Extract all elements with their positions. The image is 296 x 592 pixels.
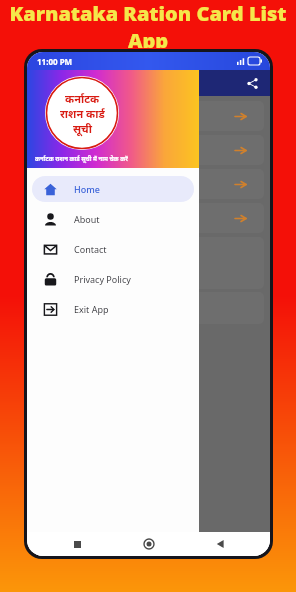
staticText: सूची <box>73 121 92 136</box>
staticText: Contact <box>74 243 107 255</box>
staticText: कर्नाटक <box>65 91 100 106</box>
staticText: बटन दबाकर इस एप को शेयर करें <box>39 296 90 316</box>
button[interactable] <box>33 203 264 233</box>
button[interactable] <box>33 101 264 131</box>
staticText: कर्नाटक राशन कार्ड सूची में नाम चेक करें <box>35 155 128 163</box>
staticText: 11:00 PM <box>37 56 73 67</box>
button[interactable]: Home <box>32 176 194 202</box>
staticText: Home <box>74 183 100 195</box>
button[interactable] <box>33 135 264 165</box>
button[interactable]: About <box>32 206 194 232</box>
staticText: Karnataka Ration Card List App <box>0 0 296 48</box>
button[interactable]: Recent apps <box>69 536 85 552</box>
button[interactable]: Back <box>212 536 228 552</box>
staticText: Privacy Policy <box>74 273 131 285</box>
staticText: Exit App <box>74 303 109 315</box>
button[interactable]: Privacy Policy <box>32 266 194 292</box>
button[interactable]: Exit App <box>32 296 194 322</box>
staticText: About <box>74 213 100 225</box>
button[interactable]: Home <box>141 536 157 552</box>
button[interactable]: Share App <box>33 237 264 289</box>
staticText: राशन कार्ड <box>60 106 105 121</box>
button[interactable]: Share <box>242 73 262 93</box>
button[interactable]: Contact <box>32 236 194 262</box>
button[interactable] <box>33 169 264 199</box>
